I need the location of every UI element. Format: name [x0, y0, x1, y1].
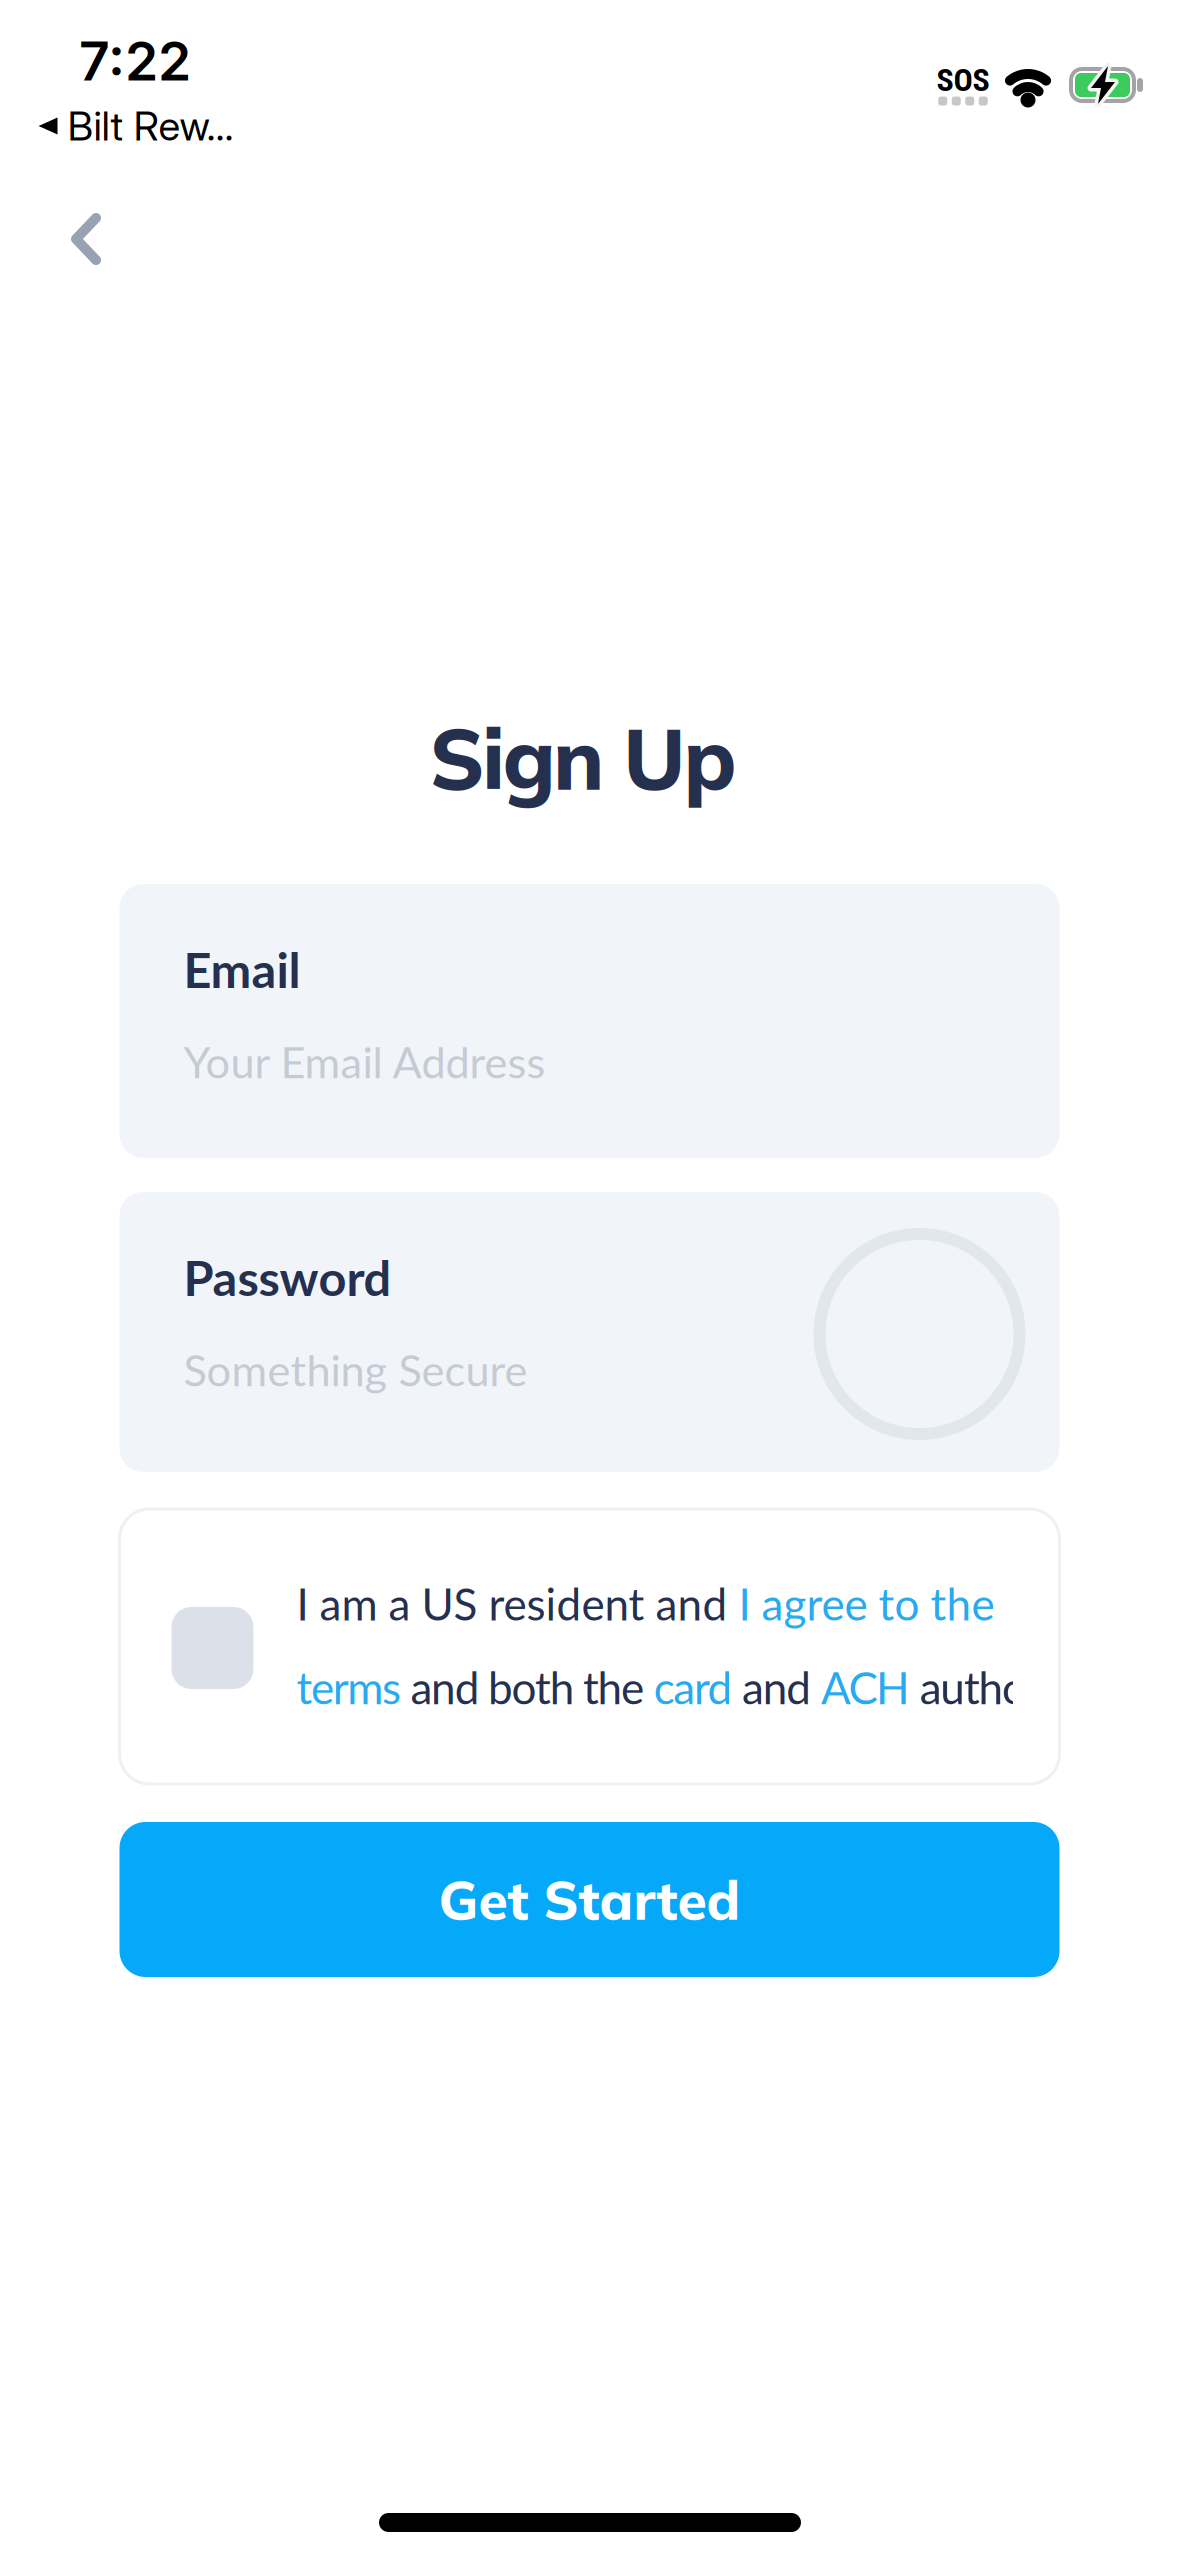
- staticText: Your Email Address: [183, 1035, 545, 1087]
- button[interactable]: Back to Bilt Rewards: [38, 102, 233, 150]
- staticText: card: [654, 1661, 732, 1714]
- staticText: autho: [910, 1661, 1027, 1714]
- staticText: Something Secure: [183, 1343, 527, 1395]
- staticText: I agree to the: [738, 1577, 994, 1630]
- staticText: Get Started: [438, 1866, 740, 1933]
- button[interactable]: Back: [66, 208, 106, 270]
- staticText: and: [732, 1661, 821, 1714]
- button[interactable]: I am a US resident and I agree to the te…: [119, 1509, 1059, 1784]
- staticText: Password: [183, 1248, 391, 1306]
- staticText: Sign Up: [429, 705, 736, 811]
- staticText: I am a US resident and: [296, 1577, 738, 1630]
- staticText: Bilt Rew...: [67, 102, 233, 150]
- staticText: Email: [183, 940, 300, 998]
- staticText: ACH: [821, 1661, 910, 1714]
- staticText: and both the: [401, 1661, 654, 1714]
- staticText: terms: [296, 1661, 401, 1714]
- staticText: SOS: [936, 61, 989, 99]
- button[interactable]: Get Started: [119, 1822, 1059, 1977]
- staticText: 7:22: [79, 29, 191, 93]
